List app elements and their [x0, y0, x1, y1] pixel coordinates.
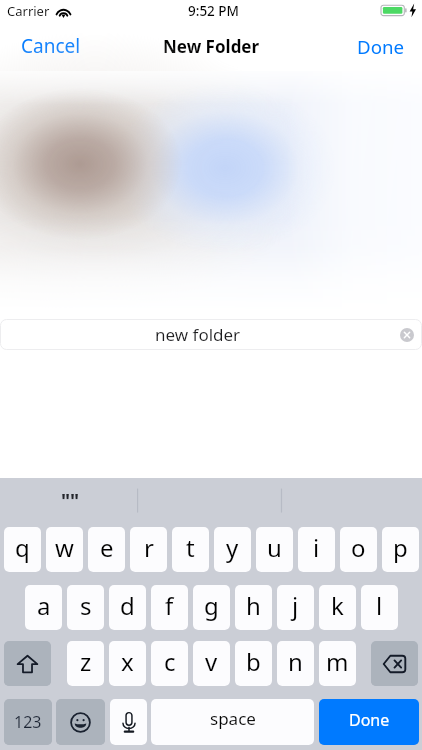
- staticText: y: [226, 531, 239, 564]
- button[interactable]: Delete: [371, 641, 418, 686]
- button[interactable]: y: [214, 527, 251, 572]
- staticText: p: [393, 531, 408, 564]
- staticText: x: [121, 645, 134, 678]
- button[interactable]: Done: [337, 26, 422, 67]
- staticText: New Folder: [163, 35, 260, 58]
- staticText: n: [288, 645, 303, 678]
- staticText: 9:52 PM: [188, 2, 239, 20]
- button[interactable]: b: [235, 641, 272, 686]
- staticText: u: [267, 531, 282, 564]
- staticText: l: [376, 589, 383, 622]
- staticText: g: [204, 589, 219, 622]
- button[interactable]: x: [109, 641, 146, 686]
- staticText: f: [165, 589, 174, 622]
- button[interactable]: j: [277, 585, 314, 630]
- button[interactable]: 123: [4, 699, 52, 745]
- button[interactable]: c: [151, 641, 188, 686]
- button[interactable]: w: [46, 527, 83, 572]
- staticText: r: [144, 531, 154, 564]
- button[interactable]: h: [235, 585, 272, 630]
- button[interactable]: q: [4, 527, 41, 572]
- staticText: j: [292, 589, 299, 622]
- button[interactable]: p: [382, 527, 419, 572]
- button[interactable]: l: [361, 585, 398, 630]
- button[interactable]: e: [88, 527, 125, 572]
- button[interactable]: r: [130, 527, 167, 572]
- staticText: Done: [357, 34, 405, 59]
- button[interactable]: space: [151, 699, 314, 745]
- staticText: Cancel: [21, 33, 81, 59]
- button[interactable]: v: [193, 641, 230, 686]
- staticText: "": [61, 488, 80, 514]
- button[interactable]: k: [319, 585, 356, 630]
- button[interactable]: d: [109, 585, 146, 630]
- staticText: i: [313, 531, 320, 564]
- staticText: d: [120, 589, 135, 622]
- staticText: m: [326, 645, 349, 678]
- button[interactable]: Cancel: [0, 25, 102, 67]
- button[interactable]: t: [172, 527, 209, 572]
- button[interactable]: i: [298, 527, 335, 572]
- button[interactable]: z: [67, 641, 104, 686]
- staticText: a: [37, 589, 51, 622]
- button[interactable]: m: [319, 641, 356, 686]
- staticText: v: [205, 645, 218, 678]
- staticText: Carrier: [7, 2, 50, 20]
- staticText: 123: [14, 711, 42, 733]
- staticText: w: [55, 531, 74, 564]
- button[interactable]: g: [193, 585, 230, 630]
- staticText: z: [80, 645, 92, 678]
- button[interactable]: o: [340, 527, 377, 572]
- staticText: s: [80, 589, 92, 622]
- staticText: b: [246, 645, 261, 678]
- staticText: q: [15, 531, 30, 564]
- button[interactable]: f: [151, 585, 188, 630]
- button[interactable]: a: [25, 585, 62, 630]
- button[interactable]: n: [277, 641, 314, 686]
- staticText: e: [100, 531, 114, 564]
- button[interactable]: Done: [319, 699, 419, 745]
- button[interactable]: Shift: [4, 641, 51, 686]
- button[interactable]: Clear text: [400, 328, 414, 342]
- button[interactable]: Dictate: [110, 699, 147, 745]
- staticText: c: [164, 645, 176, 678]
- staticText: o: [351, 531, 366, 564]
- staticText: k: [331, 589, 344, 622]
- staticText: Done: [349, 709, 390, 731]
- button[interactable]: s: [67, 585, 104, 630]
- button[interactable]: Emoji keyboard: [56, 699, 105, 745]
- staticText: new folder: [155, 323, 241, 346]
- button[interactable]: new folder: [0, 319, 422, 350]
- staticText: space: [210, 707, 256, 730]
- staticText: h: [246, 589, 261, 622]
- staticText: t: [186, 531, 195, 564]
- button[interactable]: u: [256, 527, 293, 572]
